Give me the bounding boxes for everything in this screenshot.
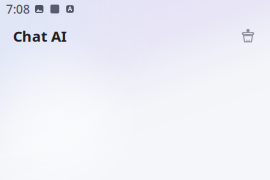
button[interactable]: Clear chat — [233, 21, 263, 51]
staticText: Chat AI — [13, 26, 67, 46]
staticText: 7:08 — [6, 1, 30, 17]
